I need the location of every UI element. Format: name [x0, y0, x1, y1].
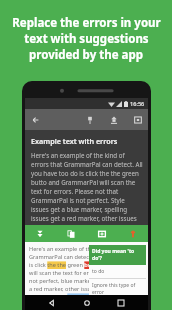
button[interactable]: Back	[44, 295, 60, 310]
button[interactable]: Home	[79, 295, 95, 310]
button[interactable]: Back	[29, 113, 43, 127]
button[interactable]: Ignore this type of error	[89, 279, 146, 298]
staticText: Did you mean 'to do'?	[92, 248, 143, 262]
button[interactable]: to do	[89, 265, 146, 278]
staticText: Ignore this type of error	[92, 282, 143, 295]
button[interactable]: More options	[131, 113, 144, 126]
button[interactable]: Scan text	[25, 225, 55, 242]
button[interactable]: Copy	[55, 225, 86, 242]
staticText: provided by the app	[29, 47, 143, 63]
staticText: Here's an example of the kind of errors …	[31, 151, 143, 225]
button[interactable]: Recent apps	[113, 295, 129, 310]
staticText: text with suggestions	[24, 31, 149, 47]
staticText: Here's an example of the kind of errors …	[29, 245, 145, 295]
staticText: Replace the errors in your	[12, 15, 161, 31]
button[interactable]: Insert	[86, 225, 117, 242]
staticText: Example text with errors	[31, 136, 118, 146]
button[interactable]: Upload	[107, 113, 120, 126]
button[interactable]: Fix errors	[117, 225, 148, 242]
staticText: to do	[92, 268, 105, 275]
staticText: 16:56	[130, 100, 145, 108]
button[interactable]: Pin	[83, 113, 96, 126]
